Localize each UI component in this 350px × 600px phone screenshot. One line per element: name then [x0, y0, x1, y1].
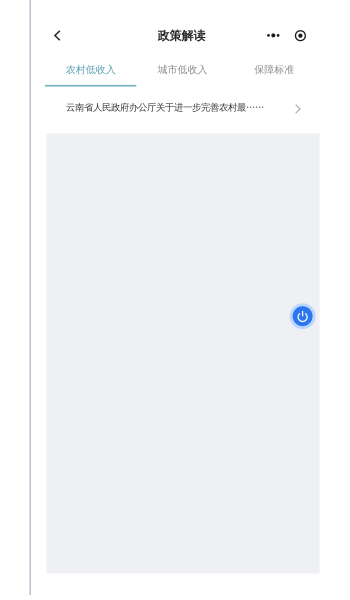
button[interactable]: Power [289, 302, 317, 330]
staticText: 农村低收入 [66, 63, 116, 76]
button[interactable]: 保障标准 [228, 54, 320, 88]
button[interactable]: Back [44, 22, 70, 48]
staticText: 保障标准 [254, 63, 294, 76]
staticText: 云南省人民政府办公厅关于进一步完善农村最…… [66, 102, 264, 113]
button[interactable]: 城市低收入 [137, 54, 228, 88]
staticText: 政策解读 [157, 28, 205, 43]
button[interactable]: More options [261, 25, 285, 47]
staticText: 城市低收入 [157, 63, 207, 76]
button[interactable]: Close mini program [289, 25, 311, 47]
button[interactable]: 云南省人民政府办公厅关于进一步完善农村最…… [31, 93, 320, 121]
button[interactable]: 农村低收入 [45, 54, 137, 88]
